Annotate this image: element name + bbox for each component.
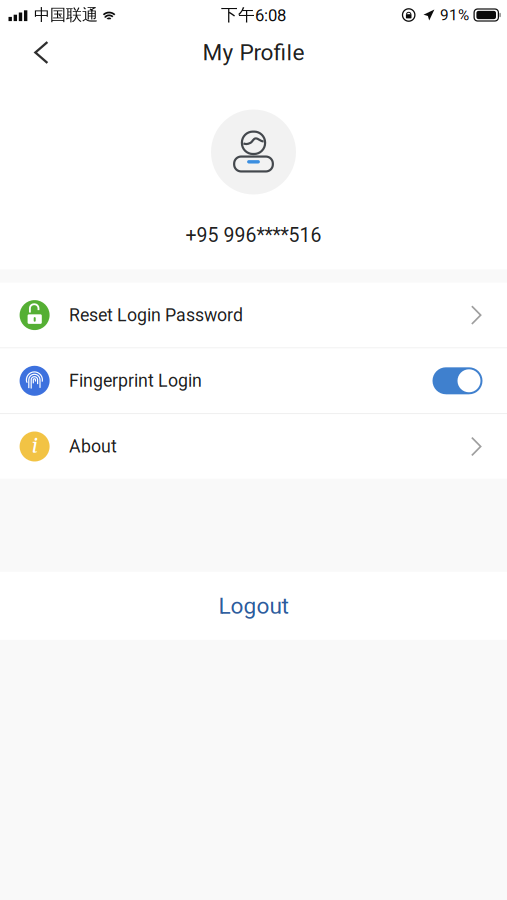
staticText: +95 996****516 xyxy=(185,224,321,247)
staticText: Reset Login Password xyxy=(69,305,243,325)
staticText: 中国联通 xyxy=(34,5,98,25)
staticText: My Profile xyxy=(202,39,304,66)
button[interactable]: i xyxy=(0,414,507,479)
button[interactable]: Back xyxy=(18,32,62,80)
button[interactable]: Logout xyxy=(0,572,507,640)
staticText: Fingerprint Login xyxy=(69,370,202,391)
staticText: Logout xyxy=(218,593,288,619)
staticText: About xyxy=(69,436,117,457)
button[interactable]: Fingerprint Login xyxy=(432,367,482,394)
button[interactable]: Reset Login Password xyxy=(0,283,507,347)
staticText: 下午6:08 xyxy=(221,4,286,25)
staticText: 91% xyxy=(440,6,469,24)
staticText: i xyxy=(32,432,39,460)
